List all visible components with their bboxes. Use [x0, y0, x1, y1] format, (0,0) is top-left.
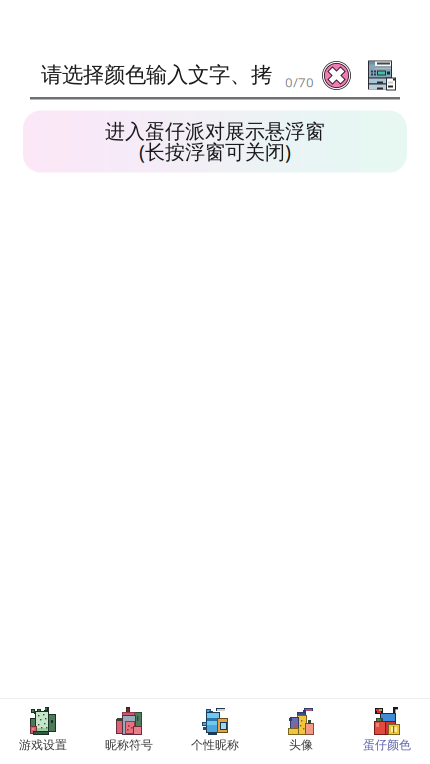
button[interactable]: 昵称符号	[86, 699, 172, 764]
staticText: 游戏设置	[19, 738, 67, 752]
staticText: 请选择颜色输入文字、拷	[41, 62, 272, 88]
staticText: 0/70	[285, 73, 314, 91]
button[interactable]: 个性昵称	[172, 699, 258, 764]
button[interactable]: 头像	[258, 699, 344, 764]
button[interactable]: 蛋仔颜色	[344, 699, 430, 764]
staticText: 蛋仔颜色	[363, 738, 411, 752]
staticText: (长按浮窗可关闭)	[139, 138, 291, 165]
staticText: 个性昵称	[191, 738, 239, 752]
button[interactable]: 复制	[351, 58, 396, 88]
staticText: 头像	[289, 738, 313, 752]
button[interactable]: 游戏设置	[0, 699, 86, 764]
staticText: 进入蛋仔派对展示悬浮窗	[105, 119, 325, 144]
button[interactable]: 清空	[314, 58, 351, 87]
staticText: 昵称符号	[105, 738, 153, 752]
